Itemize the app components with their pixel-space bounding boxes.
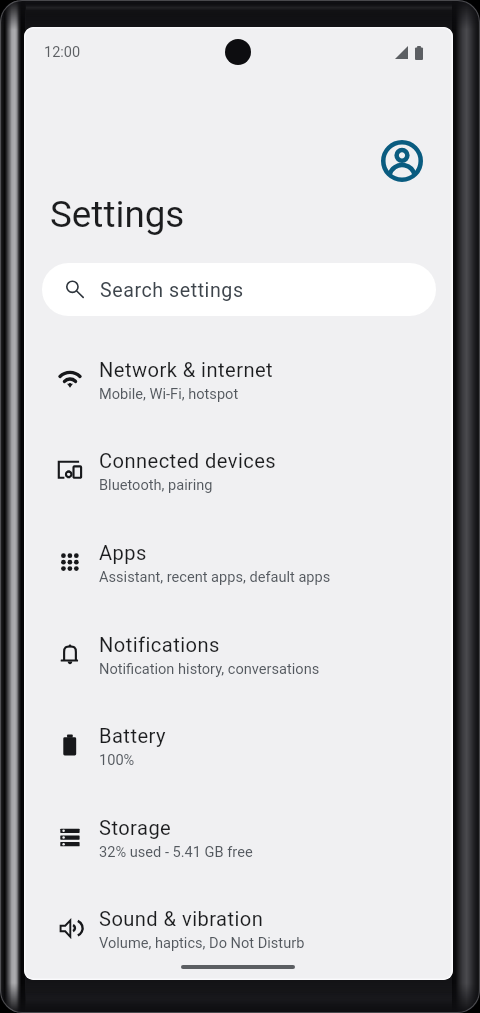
button[interactable]: Connected devices — [24, 430, 453, 522]
button[interactable]: Sound & vibration — [24, 888, 453, 980]
staticText: 100% — [99, 751, 135, 768]
staticText: Network & internet — [99, 358, 274, 382]
button[interactable]: Storage — [24, 797, 453, 889]
button[interactable]: Network & internet — [24, 339, 453, 431]
button[interactable]: Notifications — [24, 614, 453, 706]
button[interactable]: Battery — [24, 705, 453, 797]
staticText: 12:00 — [44, 44, 81, 61]
staticText: Connected devices — [99, 449, 277, 473]
staticText: Notification history, conversations — [99, 660, 320, 677]
button[interactable]: Account — [378, 137, 426, 185]
staticText: Notifications — [99, 633, 220, 657]
staticText: Volume, haptics, Do Not Disturb — [99, 934, 305, 951]
staticText: Settings — [50, 193, 185, 236]
staticText: Search settings — [100, 279, 244, 302]
staticText: Battery — [99, 724, 166, 748]
staticText: Sound & vibration — [99, 907, 264, 931]
staticText: 32% used - 5.41 GB free — [99, 843, 253, 860]
staticText: Storage — [99, 816, 172, 840]
staticText: Apps — [99, 541, 147, 565]
staticText: Assistant, recent apps, default apps — [99, 568, 331, 585]
button[interactable]: Search settings — [42, 263, 436, 316]
staticText: Bluetooth, pairing — [99, 476, 213, 493]
button[interactable]: Apps — [24, 522, 453, 614]
staticText: Mobile, Wi-Fi, hotspot — [99, 385, 239, 402]
